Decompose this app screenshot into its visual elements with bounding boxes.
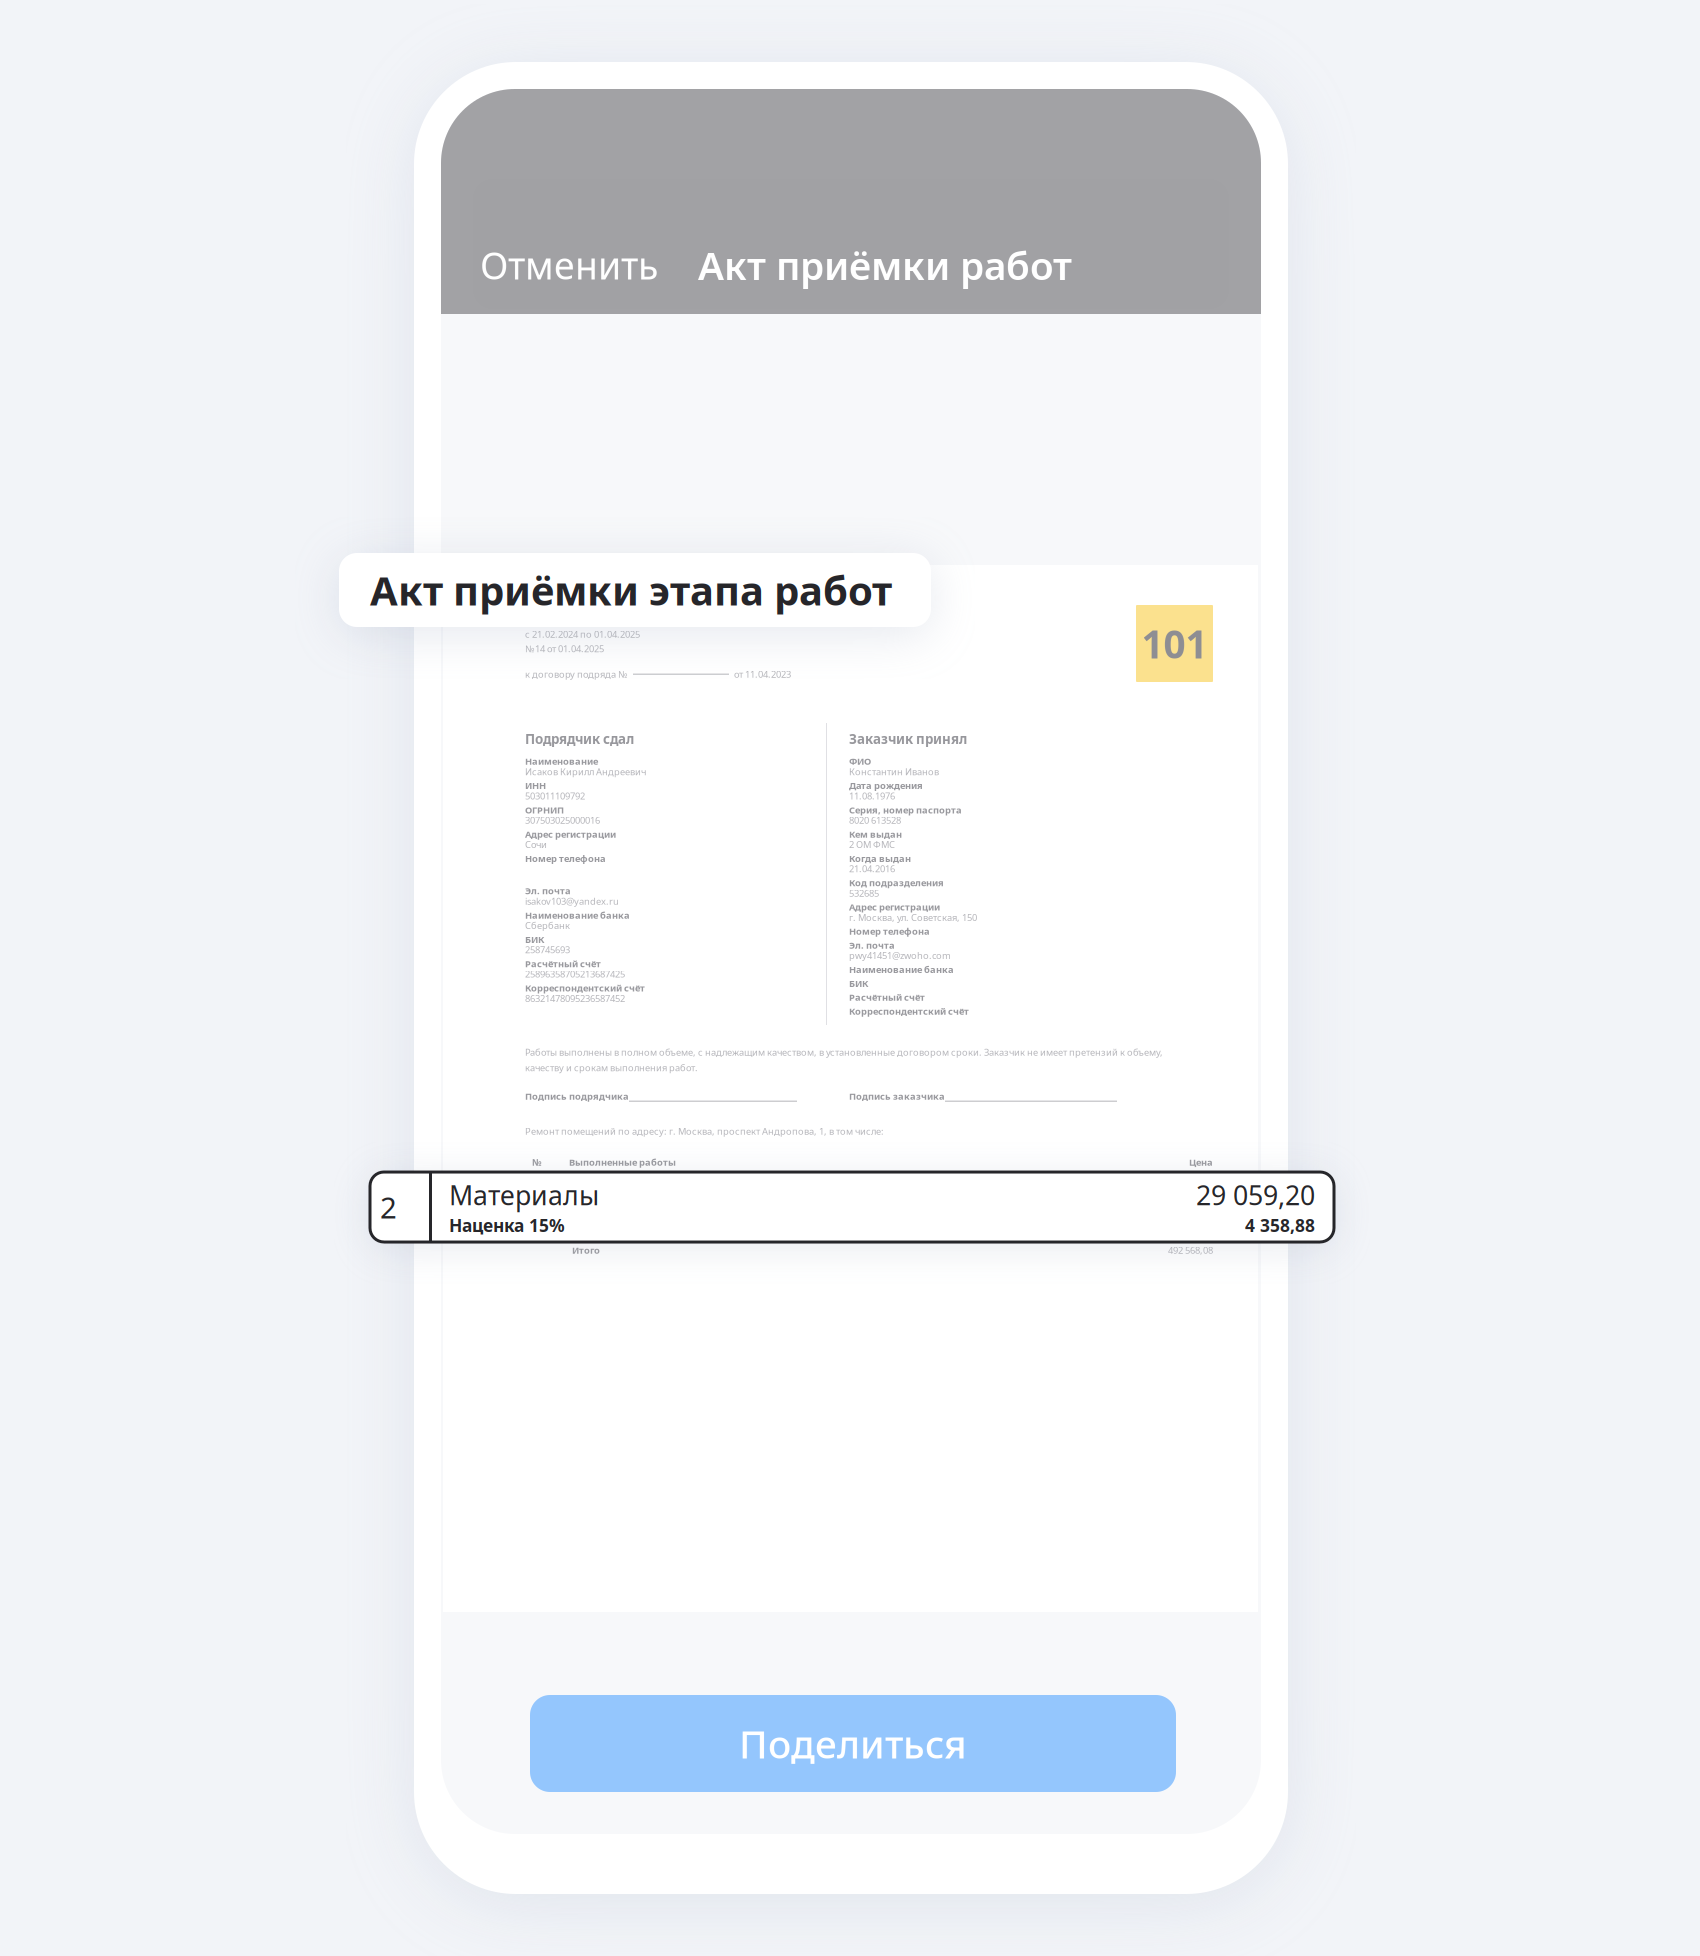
staticText: 25896358705213687425 [525, 968, 625, 980]
staticText: Наименование банка [525, 909, 630, 921]
staticText: Подрядчик сдал [525, 730, 634, 748]
staticText: Корреспондентский счёт [849, 1005, 969, 1017]
staticText: Номер телефона [849, 925, 930, 937]
staticText: Дата рождения [849, 779, 923, 792]
staticText: 532685 [849, 887, 879, 899]
staticText: Акт приёмки работ [698, 239, 1072, 291]
staticText: 258745693 [525, 943, 570, 956]
staticText: с 21.02.2024 по 01.04.2025 [525, 628, 640, 640]
staticText: Когда выдан [849, 852, 911, 864]
staticText: 4 358,88 [1245, 1214, 1315, 1237]
staticText: 492 568,08 [1168, 1244, 1213, 1256]
staticText: Подпись заказчика [849, 1090, 945, 1102]
staticText: isakov103@yandex.ru [525, 895, 619, 907]
staticText: 86321478095236587452 [525, 992, 625, 1004]
staticText: Серия, номер паспорта [849, 804, 962, 816]
staticText: Работы выполнены в полном объеме, с надл… [525, 1046, 1163, 1058]
staticText: pwy41451@zwoho.com [849, 949, 951, 962]
staticText: к договору подряда № [525, 668, 628, 680]
staticText: Адрес регистрации [849, 901, 940, 913]
staticText: Номер телефона [525, 852, 606, 864]
staticText: Код подразделения [849, 876, 944, 889]
staticText: качеству и срокам выполнения работ. [525, 1061, 698, 1074]
staticText: Сочи [525, 838, 547, 851]
button[interactable]: Отменить [472, 230, 666, 300]
staticText: 8020 613528 [849, 814, 901, 826]
staticText: Наименование [525, 755, 598, 767]
staticText: Ремонт помещений по адресу: г. Москва, п… [525, 1125, 884, 1137]
staticText: 503011109792 [525, 790, 585, 802]
staticText: 101 [1141, 618, 1207, 669]
staticText: Акт приёмки этапа работ [370, 563, 892, 616]
staticText: Константин Иванов [849, 765, 939, 778]
staticText: БИК [849, 977, 868, 989]
staticText: Расчётный счёт [525, 957, 601, 970]
staticText: Наценка 15% [449, 1214, 565, 1237]
staticText: ИНН [525, 779, 546, 792]
staticText: №14 от 01.04.2025 [525, 642, 604, 655]
staticText: 307503025000016 [525, 814, 600, 826]
staticText: Эл. почта [849, 939, 895, 951]
staticText: Отменить [480, 240, 658, 290]
staticText: БИК [525, 933, 544, 945]
button[interactable]: Поделиться [530, 1695, 1176, 1792]
staticText: Итого [572, 1244, 600, 1256]
staticText: от 11.04.2023 [734, 668, 791, 680]
staticText: Кем выдан [849, 828, 902, 840]
staticText: Адрес регистрации [525, 828, 616, 840]
staticText: 2 [380, 1187, 397, 1226]
staticText: Поделиться [739, 1718, 967, 1769]
staticText: Наименование банка [849, 963, 954, 976]
staticText: 21.04.2016 [849, 862, 895, 875]
staticText: Подпись подрядчика [525, 1090, 629, 1102]
staticText: Выполненные работы [569, 1156, 676, 1168]
staticText: 29 059,20 [1196, 1177, 1315, 1213]
staticText: 2 ОМ ФМС [849, 838, 895, 851]
staticText: Корреспондентский счёт [525, 982, 645, 994]
staticText: Материалы [449, 1177, 599, 1213]
staticText: № [532, 1156, 542, 1168]
staticText: г. Москва, ул. Советская, 150 [849, 911, 977, 923]
staticText: Исаков Кирилл Андреевич [525, 765, 646, 778]
staticText: 11.08.1976 [849, 790, 895, 802]
staticText: ОГРНИП [525, 804, 564, 816]
staticText: ФИО [849, 755, 871, 767]
staticText: Цена [1189, 1156, 1213, 1168]
staticText: Заказчик принял [849, 730, 967, 748]
staticText: Расчётный счёт [849, 991, 925, 1003]
staticText: Эл. почта [525, 884, 571, 897]
staticText: Сбербанк [525, 919, 570, 932]
